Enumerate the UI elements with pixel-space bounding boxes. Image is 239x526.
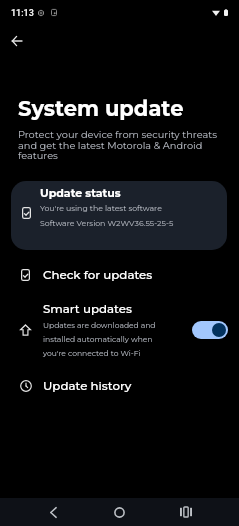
button[interactable]: Home — [105, 498, 134, 526]
staticText: Update history — [43, 379, 132, 393]
button[interactable]: Back — [2, 26, 31, 55]
button[interactable]: Update status — [11, 181, 227, 250]
staticText: Updates are downloaded and installed aut… — [43, 321, 158, 358]
staticText: You're using the latest software — [40, 203, 162, 213]
staticText: Software Version W2WV36.55-25-5 — [40, 218, 174, 228]
staticText: Check for updates — [43, 268, 153, 282]
staticText: System update — [18, 96, 184, 122]
staticText: Protect your device from security threat… — [18, 129, 223, 162]
staticText: Update status — [40, 186, 121, 199]
button[interactable]: Smart updates — [0, 299, 239, 361]
button[interactable]: Smart updates toggle — [192, 321, 228, 339]
button[interactable]: Recent apps — [171, 498, 200, 526]
button[interactable]: Check for updates — [0, 256, 239, 294]
staticText: 11:13 — [11, 8, 34, 19]
button[interactable]: Update history — [0, 367, 239, 405]
staticText: Smart updates — [43, 302, 132, 316]
button[interactable]: Back — [39, 498, 68, 526]
